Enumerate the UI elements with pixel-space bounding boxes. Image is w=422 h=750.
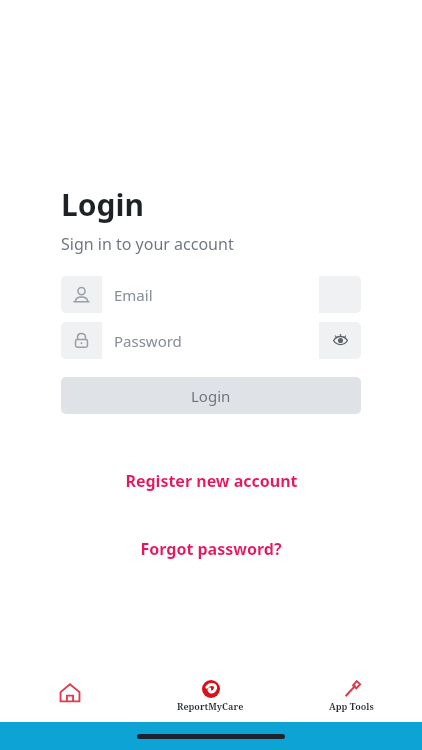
button[interactable]: Home [0,670,140,722]
staticText: Forgot password? [140,538,282,560]
button[interactable]: Show password [319,322,361,359]
button[interactable]: Password [61,322,361,359]
staticText: Sign in to your account [61,233,234,255]
staticText: Login [191,386,231,406]
button[interactable]: Email [61,276,361,313]
staticText: App Tools [329,700,374,712]
staticText: Password [114,331,182,351]
staticText: ReportMyCare [177,700,244,712]
button[interactable]: Register new account [0,470,422,492]
button[interactable]: Forgot password? [0,538,422,560]
button[interactable]: App Tools [281,670,422,722]
staticText: Login [61,184,144,225]
staticText: Register new account [125,470,298,492]
staticText: Email [114,285,153,305]
button[interactable]: Login [61,377,361,414]
button[interactable]: ReportMyCare [140,670,281,722]
